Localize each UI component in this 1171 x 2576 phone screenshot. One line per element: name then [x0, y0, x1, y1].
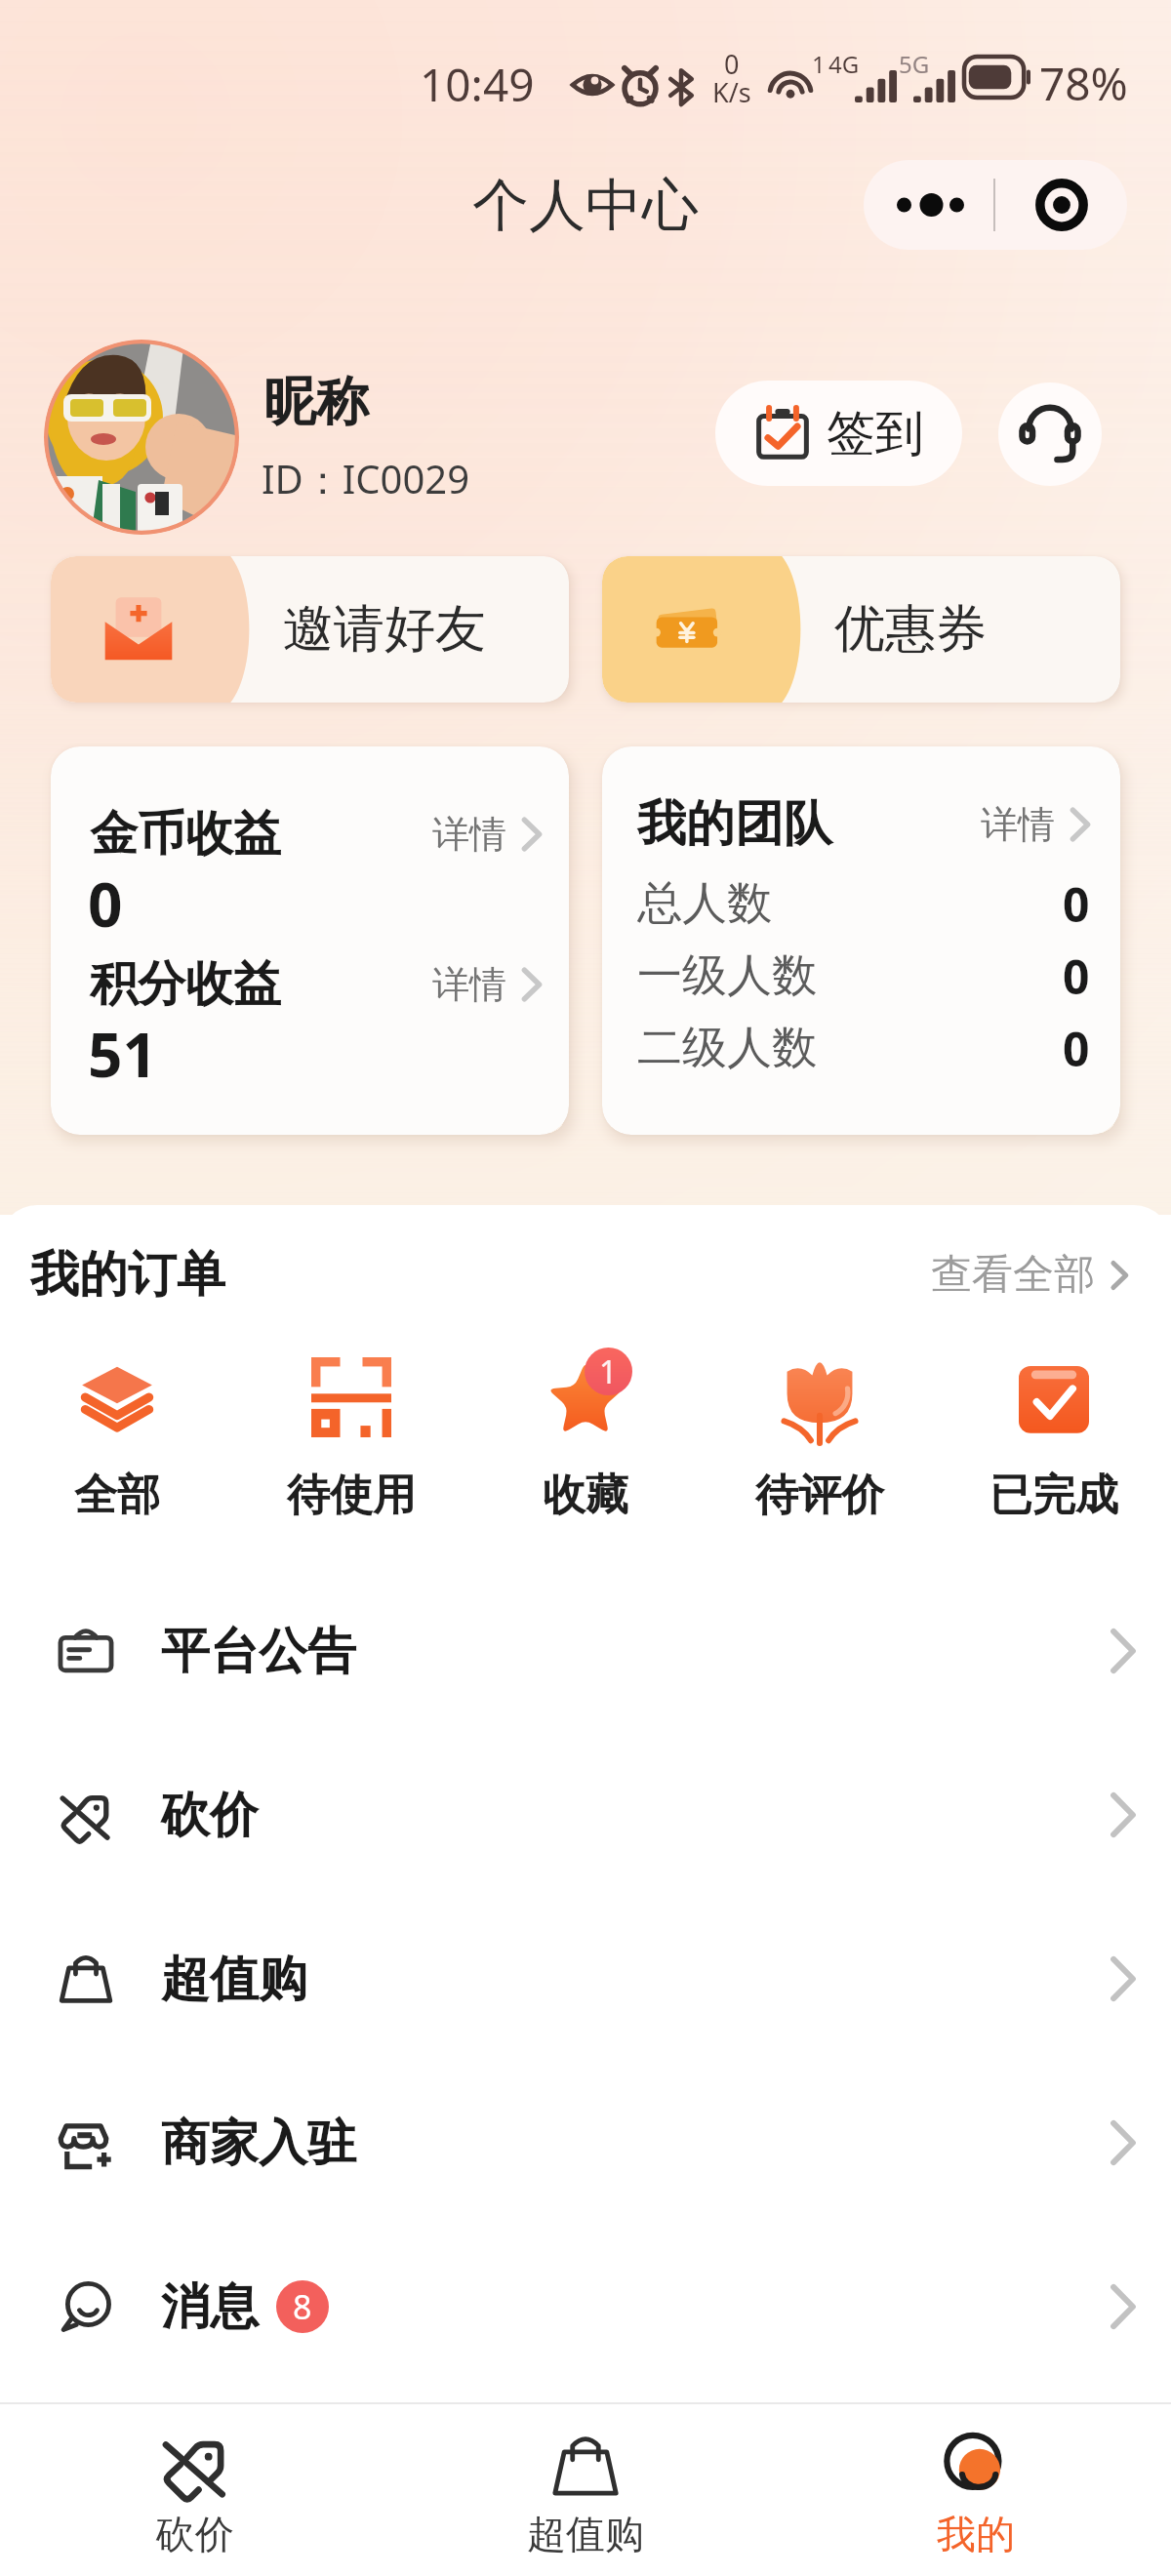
button[interactable]: 待使用	[234, 1344, 468, 1566]
staticText: 详情	[432, 811, 506, 858]
staticText: 二级人数	[637, 1020, 817, 1076]
staticText: 查看全部	[931, 1249, 1095, 1301]
button[interactable]: Avatar	[44, 340, 239, 535]
staticText: 51	[88, 1013, 157, 1095]
staticText: K/s	[712, 74, 751, 110]
staticText: 78%	[1039, 53, 1128, 114]
staticText: 全部	[74, 1469, 160, 1522]
button[interactable]: 我的	[781, 2404, 1171, 2576]
staticText: 个人中心	[472, 170, 699, 241]
staticText: 1	[599, 1350, 618, 1393]
button[interactable]: 详情	[432, 811, 542, 858]
staticText: 邀请好友	[283, 597, 486, 662]
staticText: 4G	[828, 48, 860, 80]
staticText: 0	[88, 863, 123, 945]
button[interactable]: 金币收益	[51, 746, 569, 1135]
staticText: 一级人数	[637, 947, 817, 1004]
staticText: 我的团队	[637, 793, 832, 855]
staticText: 0	[1063, 945, 1090, 1008]
staticText: 砍价	[161, 1785, 259, 1846]
staticText: 收藏	[543, 1469, 628, 1522]
button[interactable]: 砍价	[0, 2404, 390, 2576]
button[interactable]: 邀请好友	[51, 556, 569, 703]
staticText: 0	[724, 46, 740, 82]
button[interactable]: 1	[468, 1344, 703, 1566]
staticText: 0	[1063, 1017, 1090, 1080]
button[interactable]: 优惠券	[602, 556, 1120, 703]
staticText: 8	[293, 2284, 312, 2329]
button[interactable]: 平台公告	[0, 1569, 1171, 1733]
button[interactable]: 签到	[715, 381, 962, 486]
button[interactable]: Customer service	[998, 382, 1102, 486]
staticText: 我的订单	[30, 1244, 225, 1306]
staticText: 我的	[937, 2510, 1015, 2558]
staticText: ID：IC0029	[262, 452, 470, 505]
staticText: 已完成	[989, 1469, 1118, 1522]
staticText: 优惠券	[834, 597, 987, 662]
staticText: 砍价	[156, 2510, 234, 2558]
staticText: 平台公告	[161, 1621, 356, 1682]
staticText: 积分收益	[90, 954, 281, 1015]
staticText: 10:49	[420, 54, 535, 115]
staticText: 超值购	[527, 2510, 644, 2558]
button[interactable]: 全部	[0, 1344, 234, 1566]
staticText: 消息	[161, 2276, 259, 2338]
staticText: 待使用	[287, 1469, 416, 1522]
button[interactable]: 商家入驻	[0, 2061, 1171, 2225]
staticText: 商家入驻	[161, 2113, 356, 2174]
staticText: 总人数	[637, 875, 772, 932]
button[interactable]: 查看全部	[931, 1249, 1138, 1301]
button[interactable]: Mini program menu	[864, 160, 1127, 250]
button[interactable]: 我的团队	[602, 746, 1120, 1135]
staticText: 0	[1063, 872, 1090, 936]
staticText: 待评价	[755, 1469, 884, 1522]
staticText: 5G	[899, 48, 930, 80]
staticText: 超值购	[161, 1949, 307, 2010]
staticText: 昵称	[263, 369, 369, 435]
button[interactable]: 砍价	[0, 1733, 1171, 1897]
button[interactable]: 详情	[432, 961, 542, 1008]
staticText: 金币收益	[90, 804, 281, 865]
staticText: 1	[812, 48, 826, 80]
button[interactable]: 超值购	[0, 1897, 1171, 2061]
button[interactable]: 消息	[0, 2225, 1171, 2389]
staticText: 详情	[432, 961, 506, 1008]
staticText: 详情	[981, 801, 1055, 848]
button[interactable]: 待评价	[703, 1344, 937, 1566]
button[interactable]: 超值购	[390, 2404, 781, 2576]
button[interactable]: 已完成	[937, 1344, 1171, 1566]
button[interactable]: 详情	[981, 801, 1090, 848]
staticText: 签到	[827, 403, 924, 464]
